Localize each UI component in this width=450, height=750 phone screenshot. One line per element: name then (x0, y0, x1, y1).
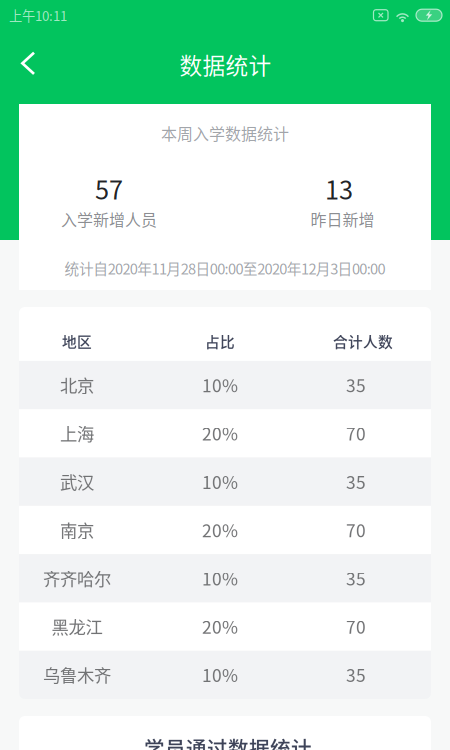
staticText: 合计人数 (333, 330, 393, 352)
staticText: 35 (346, 372, 366, 397)
staticText: 10% (202, 372, 238, 397)
staticText: 70 (346, 614, 366, 639)
staticText: 北京 (60, 372, 94, 397)
staticText: 统计自2020年11月28日00:00至2020年12月3日00:00 (64, 257, 385, 279)
staticText: 武汉 (60, 469, 94, 494)
staticText: 本周入学数据统计 (161, 121, 289, 145)
button[interactable]: Back (0, 37, 56, 89)
staticText: 35 (346, 469, 366, 494)
staticText: 学员通过数据统计 (144, 733, 312, 750)
staticText: 乌鲁木齐 (43, 662, 111, 687)
staticText: 地区 (62, 330, 92, 352)
staticText: 上海 (60, 420, 94, 446)
staticText: 10% (202, 469, 238, 494)
staticText: 上午10:11 (9, 5, 67, 25)
staticText: 35 (346, 565, 366, 590)
staticText: 57 (95, 170, 123, 207)
staticText: 13 (325, 170, 353, 207)
staticText: 昨日新增 (310, 207, 374, 231)
staticText: 占比 (205, 330, 235, 352)
staticText: 70 (346, 517, 366, 542)
staticText: 20% (202, 517, 238, 542)
staticText: 20% (202, 420, 238, 446)
staticText: 10% (202, 565, 238, 590)
staticText: 齐齐哈尔 (43, 565, 111, 590)
staticText: 10% (202, 662, 238, 687)
staticText: 数据统计 (179, 48, 271, 81)
staticText: 70 (346, 420, 366, 446)
staticText: 黑龙江 (51, 614, 102, 639)
staticText: 南京 (60, 517, 94, 542)
staticText: 20% (202, 614, 238, 639)
staticText: 35 (346, 662, 366, 687)
staticText: 入学新增人员 (61, 207, 157, 231)
